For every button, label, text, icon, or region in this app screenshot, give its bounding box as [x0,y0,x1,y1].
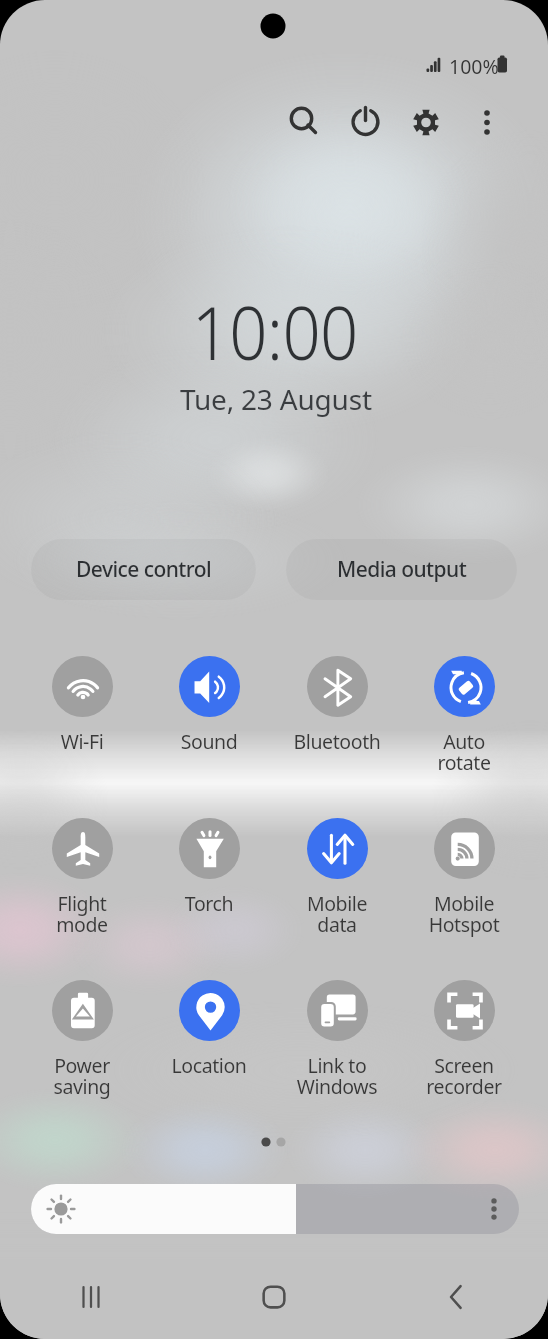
staticText: Bluetooth [277,728,397,755]
button[interactable]: Location [149,980,269,1079]
button[interactable]: More options [460,95,514,149]
staticText: Auto rotate [404,728,524,776]
staticText: Power saving [22,1052,142,1100]
button[interactable]: Power off [338,95,392,149]
button[interactable]: Media output [286,539,517,600]
staticText: Tue, 23 August [180,380,372,418]
button[interactable]: Link to Windows [277,980,397,1100]
button[interactable]: Bluetooth [277,656,397,755]
staticText: Link to Windows [277,1052,397,1100]
button[interactable]: Flight mode [22,818,142,938]
button[interactable]: Search [276,94,330,148]
button[interactable]: Sound [149,656,269,755]
staticText: Wi-Fi [22,728,142,755]
button[interactable]: Device control [31,539,256,600]
button[interactable]: Recents [0,1255,182,1339]
button[interactable]: Mobile data [277,818,397,938]
staticText: 10:00 [192,281,358,382]
button[interactable]: Home [182,1255,365,1339]
button[interactable]: Torch [149,818,269,917]
button[interactable]: Brightness [31,1184,519,1234]
staticText: 100% [449,53,499,80]
staticText: Sound [149,728,269,755]
staticText: Location [149,1052,269,1079]
button[interactable]: Screen recorder [404,980,524,1100]
staticText: Media output [337,555,467,584]
button[interactable]: Settings [399,95,453,149]
staticText: Screen recorder [404,1052,524,1100]
staticText: Device control [76,555,212,584]
button[interactable]: Brightness settings [479,1194,509,1224]
button[interactable]: Power saving [22,980,142,1100]
staticText: Torch [149,890,269,917]
button[interactable]: Auto rotate [404,656,524,776]
button[interactable]: Mobile Hotspot [404,818,524,938]
staticText: Flight mode [22,890,142,938]
staticText: Mobile Hotspot [404,890,524,938]
button[interactable]: Back [365,1255,548,1339]
staticText: Mobile data [277,890,397,938]
button[interactable]: Wi-Fi [22,656,142,755]
